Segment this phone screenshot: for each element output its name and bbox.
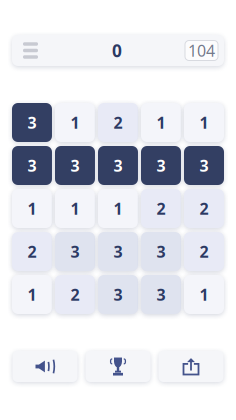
staticText: 3 — [156, 241, 165, 262]
button[interactable]: Tile 2 — [184, 189, 224, 228]
staticText: 2 — [113, 112, 122, 133]
staticText: 2 — [199, 241, 208, 262]
staticText: 3 — [113, 284, 122, 305]
button[interactable]: Tile 3 — [98, 232, 138, 271]
button[interactable]: Tile 2 — [184, 232, 224, 271]
button[interactable]: Tile 3 — [12, 146, 52, 185]
button[interactable]: Tile 2 — [12, 232, 52, 271]
button[interactable]: Tile 1 — [98, 189, 138, 228]
button[interactable]: Tile 1 — [141, 103, 181, 142]
button[interactable]: Tile 3 — [98, 146, 138, 185]
staticText: 3 — [70, 155, 79, 176]
staticText: 1 — [199, 284, 208, 305]
staticText: 3 — [113, 155, 122, 176]
button[interactable]: Tile 3 — [141, 146, 181, 185]
button[interactable]: Tile 1 — [55, 103, 95, 142]
button[interactable]: Tile 3 — [55, 232, 95, 271]
staticText: 1 — [70, 198, 79, 219]
staticText: 0 — [112, 39, 122, 62]
staticText: 1 — [27, 198, 36, 219]
button[interactable]: Tile 1 — [184, 275, 224, 314]
staticText: 1 — [199, 112, 208, 133]
staticText: 2 — [27, 241, 36, 262]
staticText: 3 — [27, 112, 36, 133]
button[interactable]: Tile 1 — [12, 189, 52, 228]
button[interactable]: Tile 2 — [141, 189, 181, 228]
staticText: 1 — [70, 112, 79, 133]
button[interactable]: Tile 3 — [55, 146, 95, 185]
button[interactable]: Tile 2 — [98, 103, 138, 142]
button[interactable]: Share — [158, 351, 223, 382]
button[interactable]: Tile 3 — [184, 146, 224, 185]
staticText: 3 — [113, 241, 122, 262]
button[interactable]: Sound — [12, 351, 77, 382]
staticText: 3 — [27, 155, 36, 176]
staticText: 3 — [156, 155, 165, 176]
button[interactable]: Tile 3 — [98, 275, 138, 314]
button[interactable]: Tile 1 — [184, 103, 224, 142]
button[interactable]: Tile 3 — [141, 275, 181, 314]
staticText: 3 — [156, 284, 165, 305]
button[interactable]: Leaderboard — [85, 351, 150, 382]
staticText: 1 — [113, 198, 122, 219]
button[interactable]: Tile 3 — [12, 103, 52, 142]
button[interactable]: Tile 1 — [55, 189, 95, 228]
staticText: 2 — [70, 284, 79, 305]
button[interactable]: Tile 2 — [55, 275, 95, 314]
button[interactable]: Menu — [12, 35, 49, 66]
staticText: 1 — [27, 284, 36, 305]
staticText: 2 — [199, 198, 208, 219]
button[interactable]: Moves remaining 104 — [185, 40, 224, 60]
staticText: 104 — [188, 40, 215, 61]
staticText: 3 — [70, 241, 79, 262]
button[interactable]: Tile 3 — [141, 232, 181, 271]
staticText: 3 — [199, 155, 208, 176]
button[interactable]: Tile 1 — [12, 275, 52, 314]
staticText: 1 — [156, 112, 165, 133]
staticText: 2 — [156, 198, 165, 219]
